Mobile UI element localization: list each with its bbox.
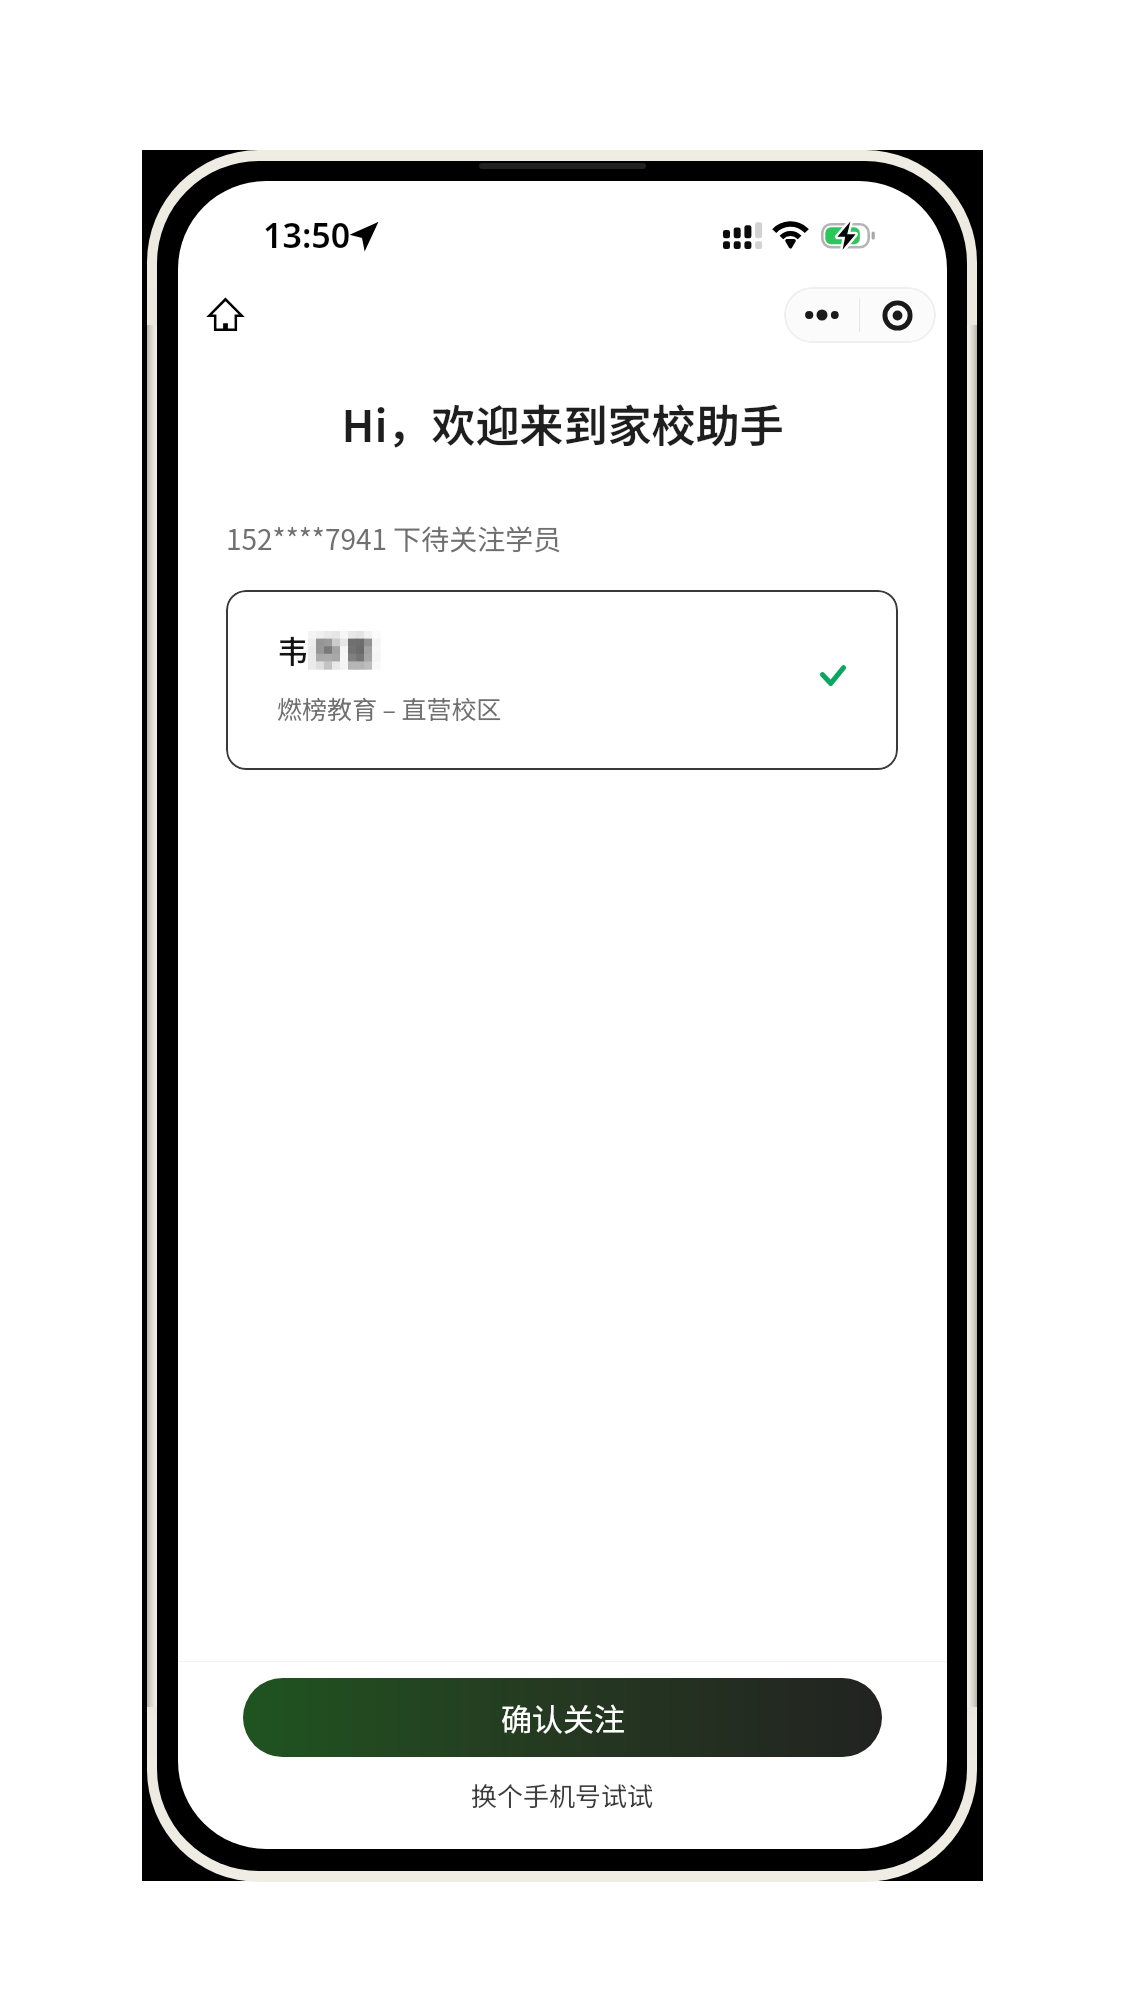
button[interactable]: Home bbox=[188, 278, 262, 350]
staticText: 确认关注 bbox=[501, 1695, 625, 1740]
button[interactable]: 确认关注 bbox=[243, 1678, 882, 1757]
staticText: Hi，欢迎来到家校助手 bbox=[178, 391, 947, 455]
staticText: 燃榜教育 – 直营校区 bbox=[277, 690, 502, 726]
staticText: 韦 bbox=[277, 627, 308, 672]
button[interactable]: 韦 bbox=[226, 590, 898, 770]
button[interactable]: More options bbox=[784, 287, 859, 343]
button[interactable]: 换个手机号试试 bbox=[178, 1771, 947, 1819]
staticText: 换个手机号试试 bbox=[471, 1776, 654, 1814]
staticText: 152****7941 下待关注学员 bbox=[226, 518, 562, 559]
button[interactable]: Close mini program bbox=[860, 287, 935, 343]
staticText: 13:50 bbox=[263, 212, 351, 258]
